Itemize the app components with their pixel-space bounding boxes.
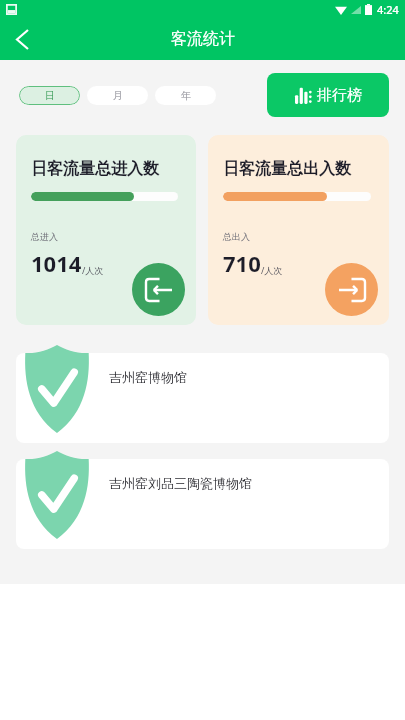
button[interactable] (16, 353, 389, 443)
staticText: 总进入 (31, 231, 58, 242)
staticText: 吉州窑刘品三陶瓷博物馆 (109, 475, 252, 491)
staticText: 排行榜 (317, 86, 362, 105)
button[interactable]: Back (0, 18, 44, 60)
staticText: 月 (113, 89, 123, 102)
button[interactable]: Exits (325, 263, 378, 316)
button[interactable]: Entries (132, 263, 185, 316)
button[interactable]: 排行榜 (267, 73, 389, 117)
staticText: 年 (181, 89, 191, 102)
button[interactable]: 日客流量总进入数 (16, 135, 196, 325)
button[interactable] (16, 459, 389, 549)
staticText: 日客流量总出入数 (223, 159, 351, 179)
staticText: 710 (223, 248, 261, 278)
staticText: 总出入 (223, 231, 250, 242)
button[interactable]: 日客流量总出入数 (208, 135, 389, 325)
staticText: /人次 (261, 264, 283, 276)
staticText: /人次 (82, 264, 104, 276)
staticText: 客流统计 (171, 29, 235, 49)
button[interactable]: 日 (19, 86, 80, 105)
button[interactable]: 月 (87, 86, 148, 105)
staticText: 1014 (31, 248, 82, 278)
staticText: 吉州窑博物馆 (109, 369, 187, 385)
staticText: 4:24 (377, 2, 399, 17)
staticText: 日 (45, 89, 55, 102)
button[interactable]: 年 (155, 86, 216, 105)
staticText: 日客流量总进入数 (31, 159, 159, 179)
